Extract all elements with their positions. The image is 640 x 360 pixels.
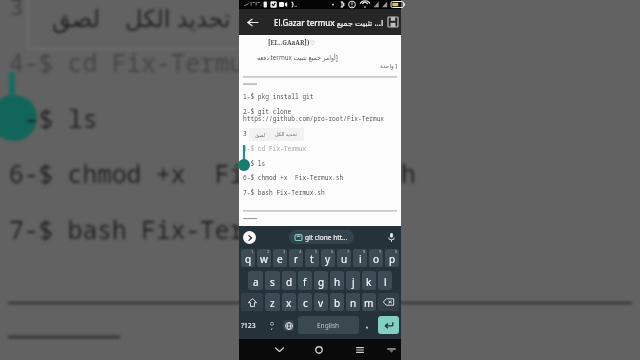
button[interactable]: 9: [369, 249, 383, 267]
button[interactable]: Voice input: [385, 231, 397, 243]
button[interactable]: Hide keyboard: [269, 339, 289, 360]
button[interactable]: f: [298, 271, 312, 290]
button[interactable]: h: [330, 271, 344, 290]
staticText: English: [317, 321, 340, 330]
staticText: o: [373, 252, 380, 266]
button[interactable]: 7: [337, 249, 351, 267]
staticText: واحدة ]: [239, 62, 397, 70]
button[interactable]: ?123: [241, 316, 256, 334]
staticText: دفعه termux أوامر جميع تثبيت]: [257, 53, 338, 61]
staticText: 1: [251, 249, 254, 254]
button[interactable]: 8: [353, 249, 367, 267]
button[interactable]: 2: [257, 249, 271, 267]
staticText: 7-$ bash Fix-Termux.sh: [243, 188, 325, 196]
button[interactable]: g: [314, 271, 328, 290]
button[interactable]: 4: [289, 249, 303, 267]
staticText: a: [253, 275, 259, 289]
button[interactable]: Emoji and comma: [265, 316, 278, 334]
button[interactable]: k: [362, 271, 376, 290]
button[interactable]: Expand suggestions: [243, 231, 256, 244]
staticText: 5: [315, 249, 318, 254]
button[interactable]: l: [378, 271, 392, 290]
staticText: ?123: [241, 321, 256, 330]
staticText: 0: [395, 249, 398, 254]
staticText: z: [270, 296, 275, 310]
staticText: f: [303, 275, 307, 289]
button[interactable]: English: [298, 316, 359, 334]
staticText: -$ ls: [24, 102, 98, 135]
staticText: 4-$ cd Fix-Termu: [9, 46, 245, 79]
staticText: 3: [283, 249, 286, 254]
staticText: y: [325, 252, 331, 266]
staticText: d: [286, 275, 293, 289]
button[interactable]: Recent apps: [350, 339, 370, 360]
staticText: 6-$ chmod +x Fix-Termux.sh: [243, 173, 344, 181]
button[interactable]: Change language: [282, 316, 294, 334]
button[interactable]: Enter: [378, 316, 399, 334]
staticText: 3: [10, 0, 24, 21]
staticText: تحديد الكل: [275, 131, 298, 138]
button[interactable]: d: [282, 271, 296, 290]
button[interactable]: Switch keyboard: [381, 339, 401, 360]
button[interactable]: Save: [384, 11, 401, 33]
button[interactable]: j: [346, 271, 360, 290]
button[interactable]: 6: [321, 249, 335, 267]
staticText: 4-$ cd Fix-Termux: [243, 144, 307, 152]
button[interactable]: Period: [361, 316, 373, 334]
staticText: h: [401, 157, 416, 190]
staticText: 1-$ pkg install git: [243, 92, 314, 100]
staticText: 8: [363, 249, 366, 254]
staticText: تحديد الكل لصق: [52, 1, 231, 34]
staticText: r: [294, 252, 299, 266]
staticText: El.Gazar termux ا... تثبيت جميع: [274, 17, 384, 28]
button[interactable]: x: [282, 293, 296, 311]
staticText: 2: [267, 249, 270, 254]
button[interactable]: v: [314, 293, 328, 311]
staticText: 3: [243, 129, 247, 137]
button[interactable]: git clone htt...: [289, 230, 354, 244]
staticText: n: [350, 296, 357, 310]
staticText: s: [270, 275, 275, 289]
staticText: j: [352, 275, 355, 289]
button[interactable]: Backspace: [378, 293, 399, 311]
staticText: 6-$ chmod +x Fix-Termux.s: [9, 157, 392, 190]
button[interactable]: s: [265, 271, 280, 290]
staticText: https://github.com/pro-root/Fix-Termux: [243, 114, 385, 122]
staticText: u: [341, 252, 348, 266]
button[interactable]: Back: [239, 9, 265, 35]
staticText: i: [359, 252, 362, 266]
staticText: git clone htt...: [305, 233, 348, 242]
staticText: 9: [379, 249, 382, 254]
staticText: w: [260, 252, 268, 266]
staticText: 7-$ bash Fix-Termux.sh: [9, 213, 333, 246]
button[interactable]: لصق: [249, 128, 304, 141]
staticText: t: [310, 252, 314, 266]
button[interactable]: z: [265, 293, 280, 311]
staticText: x: [286, 296, 292, 310]
staticText: q: [245, 252, 252, 266]
button[interactable]: c: [298, 293, 312, 311]
button[interactable]: 5: [305, 249, 319, 267]
staticText: h: [334, 275, 341, 289]
button[interactable]: a: [248, 271, 263, 290]
staticText: p: [389, 252, 396, 266]
button[interactable]: Home: [309, 339, 329, 360]
button[interactable]: 3: [273, 249, 287, 267]
button[interactable]: n: [346, 293, 360, 311]
staticText: l: [384, 275, 387, 289]
staticText: k: [366, 275, 372, 289]
button[interactable]: 0: [385, 249, 399, 267]
staticText: c: [303, 296, 308, 310]
button[interactable]: Shift: [241, 293, 263, 311]
button[interactable]: m: [362, 293, 376, 311]
staticText: e: [277, 252, 283, 266]
staticText: b: [334, 296, 341, 310]
staticText: m: [364, 296, 374, 310]
staticText: v: [318, 296, 324, 310]
button[interactable]: 1: [241, 249, 255, 267]
staticText: 4: [299, 249, 302, 254]
staticText: لصق: [255, 132, 266, 138]
button[interactable]: b: [330, 293, 344, 311]
staticText: 6: [331, 249, 334, 254]
staticText: 7: [347, 249, 350, 254]
